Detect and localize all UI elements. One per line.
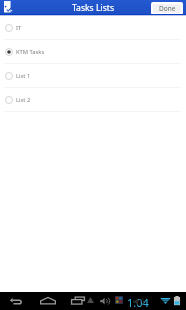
- button[interactable]: Home: [40, 293, 56, 309]
- staticText: List 1: [16, 72, 31, 80]
- button[interactable]: List 2: [0, 88, 186, 111]
- button[interactable]: Recent apps: [71, 294, 85, 308]
- button[interactable]: Tasks app: [0, 0, 14, 14]
- button[interactable]: Done: [153, 4, 181, 13]
- staticText: Tasks Lists: [72, 2, 115, 14]
- staticText: IT: [16, 24, 22, 32]
- button[interactable]: IT: [0, 16, 186, 39]
- staticText: Done: [159, 4, 176, 13]
- button[interactable]: Back: [9, 294, 23, 308]
- staticText: List 2: [16, 96, 31, 104]
- staticText: KTM Tasks: [16, 48, 45, 56]
- staticText: 1:04: [127, 295, 149, 310]
- button[interactable]: KTM Tasks: [0, 40, 186, 63]
- button[interactable]: List 1: [0, 64, 186, 87]
